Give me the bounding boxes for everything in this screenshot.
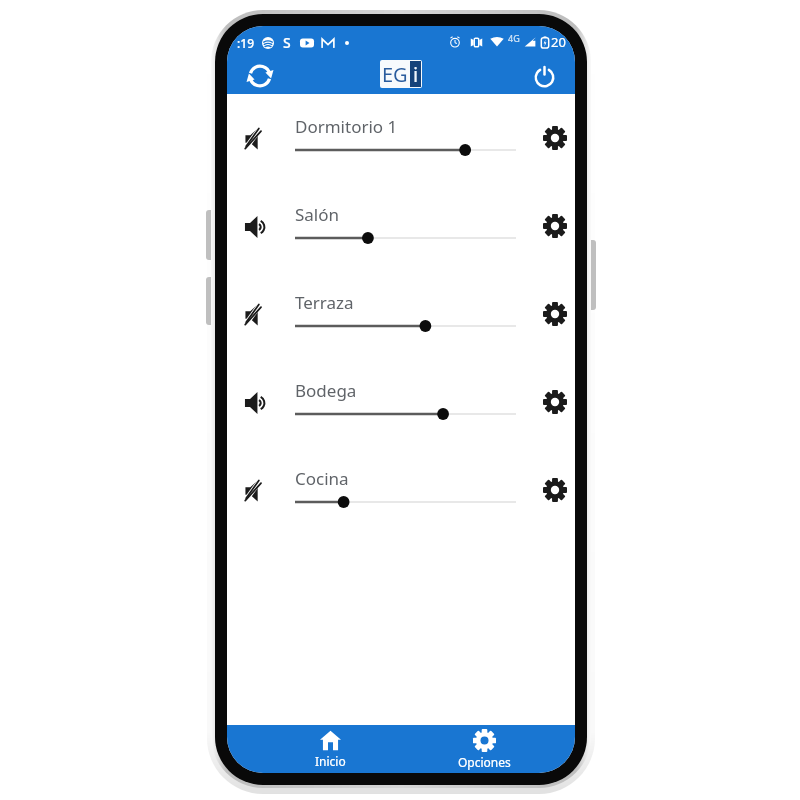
staticText: Opciones [458,754,511,770]
button[interactable]: Mute [227,270,284,358]
button[interactable]: Cocina [295,467,516,511]
button[interactable]: Settings [534,446,575,534]
staticText: 20 [551,33,566,51]
staticText: Cocina [295,467,349,490]
button[interactable]: EGi [380,60,422,88]
button[interactable]: Settings [534,358,575,446]
button[interactable]: Power [524,56,564,96]
button[interactable]: Settings [534,270,575,358]
button[interactable]: Opciones [424,725,544,773]
button[interactable]: Unmute [227,358,284,446]
button[interactable]: Dormitorio 1 [295,115,516,159]
staticText: Salón [295,203,340,226]
button[interactable]: Mute [227,94,284,182]
staticText: Inicio [315,753,346,769]
button[interactable]: Settings [534,182,575,270]
staticText: S [283,33,291,52]
staticText: Dormitorio 1 [295,115,398,138]
button[interactable]: Salón [295,203,516,247]
button[interactable]: Unmute [227,182,284,270]
staticText: 4G [508,32,520,44]
button[interactable]: Terraza [295,291,516,335]
staticText: i [413,61,419,87]
staticText: EG [382,61,408,88]
staticText: Bodega [295,379,357,402]
button[interactable]: Inicio [270,725,390,773]
staticText: Terraza [295,291,354,314]
staticText: :19 [237,35,254,51]
button[interactable]: Refresh [240,56,280,96]
button[interactable]: Settings [534,94,575,182]
button[interactable]: Bodega [295,379,516,423]
button[interactable]: Mute [227,446,284,534]
